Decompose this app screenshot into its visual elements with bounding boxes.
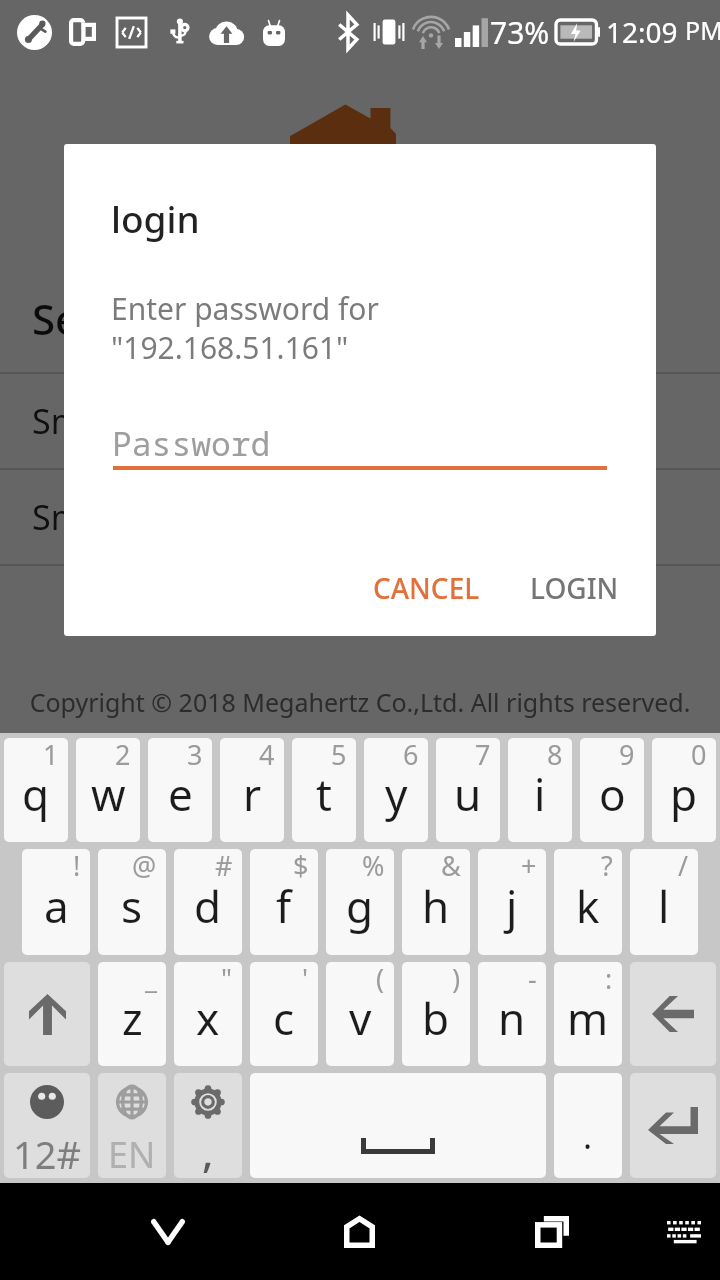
button[interactable]: / [630,849,698,955]
staticText: Smart Home 02 [32,494,282,540]
staticText: CANCEL [373,569,480,607]
button[interactable]: ! [22,849,90,955]
staticText: v [349,988,372,1048]
button[interactable]: Shift [4,962,90,1066]
button[interactable]: : [554,962,622,1066]
staticText: Password [112,421,271,466]
button[interactable]: Recents [504,1184,600,1280]
button[interactable]: Symbols [4,1073,90,1178]
button[interactable]: 4 [220,738,284,842]
button[interactable]: Smart Home 01 [0,374,720,468]
staticText: u [454,764,482,824]
staticText: Enter password for "192.168.51.161" [111,288,379,367]
staticText: % [362,849,385,884]
staticText: ? [601,849,613,884]
staticText: # [215,849,233,884]
staticText: PM [685,13,720,47]
button[interactable]: Backspace [630,962,716,1066]
staticText: d [194,876,222,936]
staticText: g [346,876,374,936]
staticText: r [243,764,262,824]
staticText: m [567,988,609,1048]
button[interactable]: & [402,849,470,955]
button[interactable]: % [326,849,394,955]
staticText: ! [73,849,81,884]
button[interactable]: " [174,962,242,1066]
button[interactable]: 5 [292,738,356,842]
staticText: " [221,962,233,997]
staticText: x [196,988,220,1048]
button[interactable]: 0 [652,738,716,842]
staticText: w [91,764,126,824]
staticText: Select a device [32,290,325,347]
button[interactable]: 8 [508,738,572,842]
button[interactable]: Period [554,1073,622,1178]
button[interactable]: Smart Home 02 [0,470,720,564]
button[interactable]: ) [402,962,470,1066]
staticText: Smart Home 01 [32,398,282,444]
staticText: $ [293,849,309,884]
button[interactable]: Home [311,1184,407,1280]
button[interactable]: + [478,849,546,955]
staticText: s [121,876,143,936]
button[interactable]: Switch keyboard [636,1184,720,1280]
button[interactable]: 2 [76,738,140,842]
button[interactable]: 6 [364,738,428,842]
button[interactable]: CANCEL [357,555,496,621]
staticText: 5 [331,738,347,773]
button[interactable]: ? [554,849,622,955]
button[interactable]: _ [98,962,166,1066]
button[interactable]: Space [250,1073,546,1178]
staticText: y [385,764,408,824]
staticText: 4 [259,738,275,773]
staticText: _ [145,962,157,997]
staticText: login [111,193,200,243]
button[interactable]: Settings [174,1073,242,1178]
button[interactable]: Enter [630,1073,716,1178]
staticText: o [599,764,626,824]
button[interactable]: - [478,962,546,1066]
staticText: h [422,876,450,936]
staticText: a [44,876,69,936]
staticText: n [498,988,526,1048]
button[interactable]: @ [98,849,166,955]
staticText: ) [452,962,461,997]
staticText: 8 [547,738,563,773]
staticText: f [276,876,292,936]
staticText: 2 [115,738,131,773]
staticText: - [528,962,537,997]
staticText: z [122,988,143,1048]
button[interactable]: 3 [148,738,212,842]
button[interactable]: 1 [4,738,68,842]
button[interactable]: Language [98,1073,166,1178]
button[interactable]: ' [250,962,318,1066]
button[interactable]: 9 [580,738,644,842]
staticText: j [506,876,518,936]
staticText: LOGIN [530,569,619,607]
staticText: ( [376,962,385,997]
staticText: @ [132,849,157,884]
staticText: 0 [691,738,707,773]
button[interactable]: $ [250,849,318,955]
staticText: 9 [619,738,635,773]
staticText: 7 [475,738,491,773]
staticText: , [202,1123,214,1178]
staticText: e [168,764,193,824]
button[interactable]: LOGIN [514,555,635,621]
button[interactable]: # [174,849,242,955]
staticText: 6 [403,738,419,773]
staticText: 12:09 [606,13,678,51]
button[interactable]: ( [326,962,394,1066]
staticText: 3 [187,738,203,773]
staticText: k [576,876,600,936]
staticText: / [678,849,689,884]
staticText: EN [108,1130,156,1178]
staticText: p [670,764,698,824]
staticText: 12# [13,1128,82,1178]
staticText: & [441,849,461,884]
staticText: ' [302,962,309,997]
staticText: 73% [490,12,550,53]
staticText: . [583,1113,593,1159]
button[interactable]: Hide keyboard [120,1184,216,1280]
button[interactable]: 7 [436,738,500,842]
